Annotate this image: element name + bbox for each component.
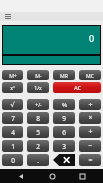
button[interactable]: M-	[27, 70, 49, 80]
button[interactable]: 0	[2, 154, 23, 166]
button[interactable]: Menu	[4, 13, 11, 19]
staticText: −	[88, 141, 93, 151]
button[interactable]: ×	[79, 112, 101, 124]
staticText: MC	[86, 72, 94, 79]
button[interactable]: =	[79, 154, 101, 166]
button[interactable]: MC	[79, 70, 101, 80]
button[interactable]: 1	[2, 140, 23, 152]
staticText: ×	[88, 113, 93, 123]
button[interactable]: x²	[2, 82, 23, 93]
button[interactable]: AC	[53, 82, 101, 93]
staticText: %	[62, 101, 67, 109]
button[interactable]: 1/x	[27, 82, 49, 93]
button[interactable]: 2	[27, 140, 49, 152]
button[interactable]: Back	[11, 169, 31, 183]
staticText: 1/x	[34, 84, 42, 91]
staticText: ÷	[88, 100, 93, 110]
staticText: 1	[11, 142, 15, 151]
button[interactable]: 5	[27, 126, 49, 138]
staticText: MR	[60, 72, 68, 79]
button[interactable]: M+	[2, 70, 23, 80]
button[interactable]: 8	[27, 112, 49, 124]
staticText: M-	[35, 72, 42, 79]
button[interactable]: +/-	[27, 99, 49, 110]
staticText: 2	[36, 142, 40, 151]
button[interactable]: .	[27, 154, 49, 166]
staticText: +/-	[35, 101, 42, 108]
staticText: x²	[10, 84, 15, 91]
staticText: 8	[36, 114, 40, 123]
staticText: M+	[9, 72, 17, 79]
staticText: 9	[62, 114, 66, 123]
staticText: +	[88, 127, 93, 137]
staticText: 7	[11, 114, 15, 123]
button[interactable]: 6	[53, 126, 75, 138]
staticText: 0	[11, 156, 15, 165]
button[interactable]: √	[2, 99, 23, 110]
staticText: √	[10, 101, 15, 109]
staticText: 0	[89, 32, 95, 44]
staticText: .	[37, 156, 39, 165]
button[interactable]: −	[79, 140, 101, 152]
staticText: =	[88, 155, 93, 165]
button[interactable]: Backspace	[53, 154, 75, 166]
button[interactable]: 4	[2, 126, 23, 138]
button[interactable]: 9	[53, 112, 75, 124]
button[interactable]: Recents	[72, 169, 92, 183]
staticText: AC	[74, 84, 81, 92]
staticText: 3	[62, 142, 66, 151]
button[interactable]: ÷	[79, 99, 101, 110]
button[interactable]: +	[79, 126, 101, 138]
button[interactable]: Home	[42, 169, 62, 183]
button[interactable]: 3	[53, 140, 75, 152]
button[interactable]: MR	[53, 70, 75, 80]
button[interactable]: %	[53, 99, 75, 110]
staticText: 6	[62, 128, 66, 137]
button[interactable]: 7	[2, 112, 23, 124]
staticText: 5	[36, 128, 40, 137]
staticText: 4	[11, 128, 15, 137]
